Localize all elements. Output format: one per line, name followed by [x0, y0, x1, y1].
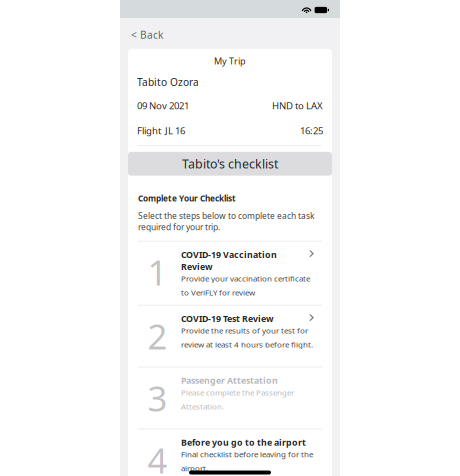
staticText: COVID-19 Test Review: [181, 312, 274, 324]
staticText: 09 Nov 2021: [137, 99, 189, 112]
staticText: Before you go to the airport: [181, 436, 306, 448]
staticText: 3: [147, 374, 167, 422]
button[interactable]: < Back: [120, 18, 163, 49]
staticText: My Trip: [214, 55, 246, 67]
staticText: 4: [147, 436, 167, 476]
staticText: Passenger Attestation: [181, 374, 278, 386]
staticText: Flight JL 16: [137, 124, 185, 137]
staticText: Tabito Ozora: [137, 75, 199, 89]
staticText: Tabito's checklist: [182, 155, 278, 172]
button[interactable]: 2: [128, 305, 332, 367]
button[interactable]: Tabito's checklist: [128, 152, 332, 176]
staticText: HND to LAX: [272, 99, 323, 112]
button[interactable]: 4: [128, 429, 332, 476]
button[interactable]: 3: [128, 367, 332, 429]
staticText: Provide your vaccination certificate to …: [181, 273, 310, 298]
staticText: Provide the results of your test for rev…: [181, 325, 313, 350]
staticText: 1: [147, 248, 167, 296]
staticText: Final checklist before leaving for the a…: [181, 449, 313, 474]
button[interactable]: 1: [128, 241, 332, 305]
staticText: Please complete the Passenger Attestatio…: [181, 387, 294, 412]
staticText: Select the steps below to complete each …: [138, 210, 314, 233]
staticText: Complete Your Checklist: [138, 193, 236, 204]
staticText: COVID-19 Vaccination Review: [181, 248, 277, 272]
staticText: 16:25: [300, 124, 323, 137]
staticText: 2: [147, 312, 167, 360]
staticText: < Back: [131, 28, 163, 42]
